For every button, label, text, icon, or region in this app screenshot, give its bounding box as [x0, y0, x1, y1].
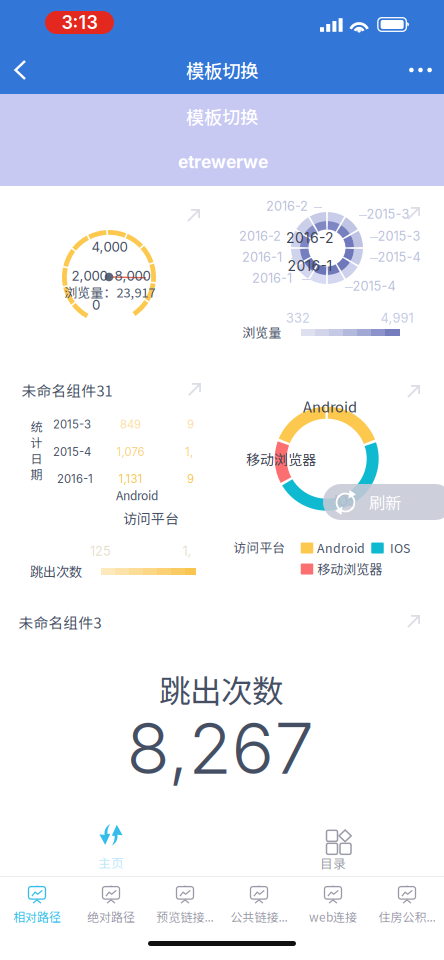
staticText: etrewerwe	[178, 151, 268, 172]
button[interactable]: Back	[0, 46, 41, 94]
staticText: Android	[303, 395, 357, 417]
staticText: web连接	[309, 908, 357, 925]
staticText: 访问平台	[123, 508, 179, 528]
staticText: Android	[317, 538, 365, 556]
staticText: 4,000	[91, 239, 127, 255]
staticText: 2016-2	[239, 228, 281, 244]
staticText: 统	[30, 417, 42, 435]
staticText: 2015-4	[352, 278, 395, 294]
staticText: 125	[90, 543, 111, 559]
button[interactable]: web连接	[296, 877, 370, 933]
staticText: 跳出次数	[159, 666, 283, 712]
staticText: 日	[30, 449, 42, 467]
staticText: 浏览量	[242, 323, 281, 341]
staticText: 2015-3	[377, 228, 420, 244]
staticText: 绝对路径	[87, 908, 135, 925]
staticText: 2015-3	[53, 418, 91, 431]
staticText: 移动浏览器	[317, 559, 382, 578]
staticText: 9	[187, 472, 194, 486]
staticText: 849	[120, 418, 141, 431]
staticText: 未命名组件3	[18, 611, 101, 633]
staticText: 访问平台	[233, 538, 285, 556]
staticText: 9	[187, 418, 194, 431]
staticText: Android	[116, 486, 158, 504]
button[interactable]: 相对路径	[0, 877, 74, 933]
button[interactable]: 公共链接...	[222, 877, 296, 933]
staticText: 目录	[320, 854, 346, 872]
staticText: 移动浏览器	[246, 449, 316, 469]
staticText: 预览链接...	[156, 908, 213, 925]
staticText: 2015-4	[377, 249, 420, 265]
staticText: 0	[92, 297, 100, 313]
staticText: 2015-4	[53, 445, 91, 459]
button[interactable]: 目录	[290, 822, 376, 874]
staticText: 2016-2	[266, 198, 308, 214]
staticText: 住房公积...	[378, 908, 435, 925]
staticText: 2016-2	[286, 229, 334, 246]
staticText: 未命名组件31	[21, 379, 112, 401]
staticText: 2016-1	[252, 270, 292, 286]
staticText: 4,991	[380, 310, 413, 326]
staticText: 公共链接...	[230, 908, 287, 925]
button[interactable]: 主页	[68, 821, 154, 873]
staticText: 1,	[182, 543, 191, 559]
staticText: 8,000	[114, 268, 150, 284]
staticText: 模板切换	[186, 57, 258, 83]
staticText: 1,131	[118, 472, 142, 486]
staticText: 浏览量：23,917	[64, 283, 155, 301]
staticText: 3:13	[61, 12, 97, 33]
staticText: 相对路径	[13, 908, 61, 925]
staticText: 8,267	[126, 705, 314, 791]
button[interactable]: 住房公积...	[370, 877, 444, 933]
staticText: IOS	[334, 490, 356, 510]
staticText: 2016-1	[57, 472, 93, 486]
staticText: 1,	[185, 445, 193, 459]
staticText: 跳出次数	[30, 561, 82, 581]
staticText: 计	[30, 433, 42, 451]
button[interactable]: 预览链接...	[148, 877, 222, 933]
button[interactable]: 绝对路径	[74, 877, 148, 933]
staticText: 2015-3	[366, 206, 409, 222]
staticText: 2016-1	[287, 257, 332, 274]
staticText: 1,076	[116, 445, 144, 459]
button[interactable]: 刷新	[323, 484, 444, 520]
staticText: 主页	[98, 853, 124, 872]
staticText: 332	[286, 310, 310, 326]
staticText: 期	[30, 465, 42, 483]
staticText: 刷新	[369, 490, 401, 514]
staticText: 2,000	[71, 268, 107, 284]
staticText: 2016-1	[242, 249, 282, 265]
staticText: 模板切换	[186, 103, 258, 129]
staticText: IOS	[390, 538, 410, 556]
button[interactable]: More options	[397, 46, 444, 94]
